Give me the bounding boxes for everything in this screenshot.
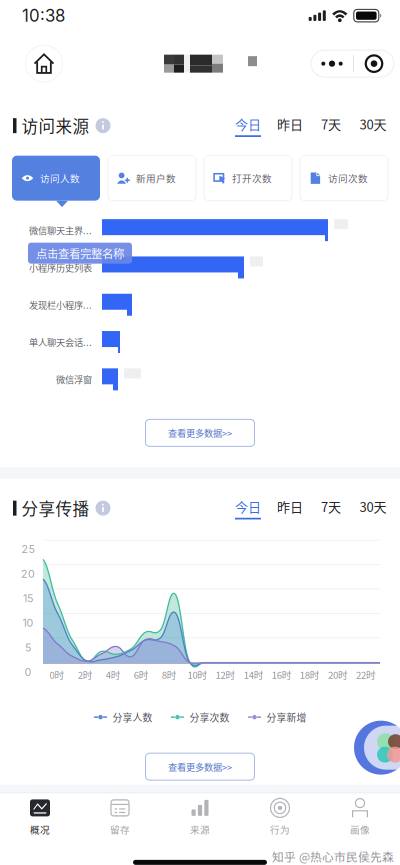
staticText: 今日 xyxy=(235,114,261,133)
staticText: 7天 xyxy=(321,497,341,516)
staticText: 分享传播 xyxy=(21,496,89,520)
staticText: 4时 xyxy=(106,668,121,682)
staticText: 7天 xyxy=(321,114,341,133)
button[interactable]: 画像 xyxy=(320,792,400,842)
button[interactable]: 打开次数 xyxy=(204,156,292,201)
staticText: 10时 xyxy=(187,668,207,682)
staticText: 0 xyxy=(24,666,31,679)
staticText: 点击查看完整名称 xyxy=(36,245,124,261)
button[interactable]: 留存 xyxy=(80,792,160,842)
staticText: 6时 xyxy=(134,668,149,682)
button[interactable]: 30天 xyxy=(358,497,388,519)
staticText: 20 xyxy=(21,567,35,580)
staticText: 14时 xyxy=(244,668,264,682)
staticText: 来源 xyxy=(190,822,210,836)
button[interactable]: More xyxy=(311,50,353,77)
staticText: 新用户数 xyxy=(136,171,176,185)
staticText: 小程序历史列表 xyxy=(29,261,92,274)
staticText: 16时 xyxy=(272,668,292,682)
button[interactable]: 30天 xyxy=(358,115,388,137)
staticText: 分享新增 xyxy=(266,710,306,724)
button[interactable]: Assistant xyxy=(346,721,400,775)
staticText: 20时 xyxy=(328,668,348,682)
staticText: 分享人数 xyxy=(112,710,152,724)
button[interactable]: 查看更多数据>> xyxy=(145,753,254,780)
staticText: 访问次数 xyxy=(328,171,368,185)
button[interactable]: Close xyxy=(354,50,394,77)
staticText: 查看更多数据>> xyxy=(168,760,232,773)
button[interactable]: 7天 xyxy=(318,115,344,137)
staticText: 25 xyxy=(21,543,34,556)
staticText: 知乎 @热心市民侯先森 xyxy=(272,848,394,865)
button[interactable]: 新用户数 xyxy=(108,156,196,201)
staticText: 8时 xyxy=(162,668,177,682)
staticText: 30天 xyxy=(359,114,386,133)
staticText: 行为 xyxy=(270,822,290,836)
staticText: 昨日 xyxy=(277,497,303,516)
staticText: 18时 xyxy=(300,668,320,682)
button[interactable]: 行为 xyxy=(240,792,320,842)
staticText: 0时 xyxy=(49,668,64,682)
staticText: 查看更多数据>> xyxy=(168,426,232,439)
staticText: 15 xyxy=(23,592,33,605)
staticText: 发现栏小程序... xyxy=(29,298,92,311)
button[interactable]: 昨日 xyxy=(276,115,304,137)
staticText: 今日 xyxy=(235,497,261,516)
staticText: 访问来源 xyxy=(21,114,89,138)
staticText: 微信浮窗 xyxy=(56,373,92,386)
button[interactable]: 访问人数 xyxy=(12,156,100,201)
staticText: 12时 xyxy=(215,668,235,682)
staticText: 2时 xyxy=(78,668,93,682)
button[interactable]: 访问次数 xyxy=(300,156,388,201)
staticText: 打开次数 xyxy=(232,171,272,185)
staticText: 30天 xyxy=(359,497,386,516)
staticText: 昨日 xyxy=(277,114,303,133)
staticText: 22时 xyxy=(356,668,376,682)
button[interactable]: 今日 xyxy=(234,115,262,137)
staticText: 10 xyxy=(22,616,33,629)
button[interactable]: 7天 xyxy=(318,497,344,519)
button[interactable]: 今日 xyxy=(234,497,262,519)
staticText: 留存 xyxy=(110,822,130,836)
staticText: 微信聊天主界... xyxy=(29,223,92,237)
staticText: 5 xyxy=(25,641,31,654)
staticText: 概况 xyxy=(30,822,50,836)
staticText: 画像 xyxy=(350,822,370,836)
staticText: 分享次数 xyxy=(189,710,229,724)
staticText: 访问人数 xyxy=(40,171,80,185)
button[interactable]: Home xyxy=(24,44,64,84)
button[interactable]: 昨日 xyxy=(276,497,304,519)
staticText: 单人聊天会话... xyxy=(29,335,92,349)
staticText: 10:38 xyxy=(22,5,65,26)
button[interactable]: 查看更多数据>> xyxy=(145,419,254,446)
button[interactable]: 来源 xyxy=(160,792,240,842)
button[interactable]: 概况 xyxy=(0,792,80,842)
